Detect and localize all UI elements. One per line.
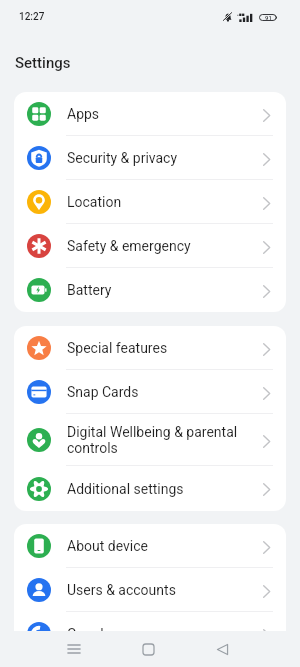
button[interactable]: Special features: [14, 326, 286, 370]
button[interactable]: Snap Cards: [14, 370, 286, 414]
button[interactable]: Users & accounts: [14, 568, 286, 612]
button[interactable]: Recent apps: [56, 631, 92, 667]
staticText: Special features: [67, 340, 257, 356]
button[interactable]: Battery: [14, 268, 286, 312]
button[interactable]: Back: [204, 631, 240, 667]
staticText: Users & accounts: [67, 582, 257, 598]
button[interactable]: Additional settings: [14, 466, 286, 511]
staticText: Snap Cards: [67, 384, 257, 400]
staticText: Apps: [67, 106, 257, 122]
button[interactable]: Safety & emergency: [14, 224, 286, 268]
staticText: Battery: [67, 282, 257, 298]
button[interactable]: Google: [14, 612, 286, 656]
button[interactable]: Digital Wellbeing & parental controls: [14, 414, 286, 466]
staticText: Additional settings: [67, 481, 257, 497]
staticText: Security & privacy: [67, 150, 257, 166]
staticText: Digital Wellbeing & parental controls: [67, 424, 257, 456]
staticText: 91: [265, 14, 272, 21]
staticText: Google: [67, 626, 257, 642]
button[interactable]: Security & privacy: [14, 136, 286, 180]
button[interactable]: Home: [130, 631, 166, 667]
staticText: 12:27: [19, 11, 45, 23]
staticText: Safety & emergency: [67, 238, 257, 254]
staticText: About device: [67, 538, 257, 554]
button[interactable]: About device: [14, 524, 286, 568]
staticText: Location: [67, 194, 257, 210]
button[interactable]: Location: [14, 180, 286, 224]
button[interactable]: Apps: [14, 92, 286, 136]
staticText: Settings: [15, 54, 71, 72]
